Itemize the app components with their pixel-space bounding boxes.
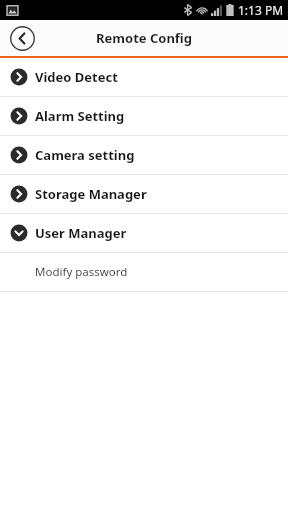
button[interactable]: Alarm Setting xyxy=(0,97,288,135)
staticText: Alarm Setting xyxy=(35,107,125,125)
button[interactable]: Back xyxy=(8,24,36,52)
staticText: Remote Config xyxy=(0,29,288,47)
button[interactable]: Video Detect xyxy=(0,58,288,96)
staticText: Storage Manager xyxy=(35,185,147,203)
staticText: Modify password xyxy=(35,264,128,280)
staticText: User Manager xyxy=(35,224,127,242)
button[interactable]: Storage Manager xyxy=(0,175,288,213)
staticText: 1:13 PM xyxy=(238,2,284,18)
button[interactable]: Camera setting xyxy=(0,136,288,174)
staticText: Video Detect xyxy=(35,68,118,86)
button[interactable]: User Manager xyxy=(0,214,288,252)
staticText: Camera setting xyxy=(35,146,135,164)
button[interactable]: Modify password xyxy=(0,253,288,291)
